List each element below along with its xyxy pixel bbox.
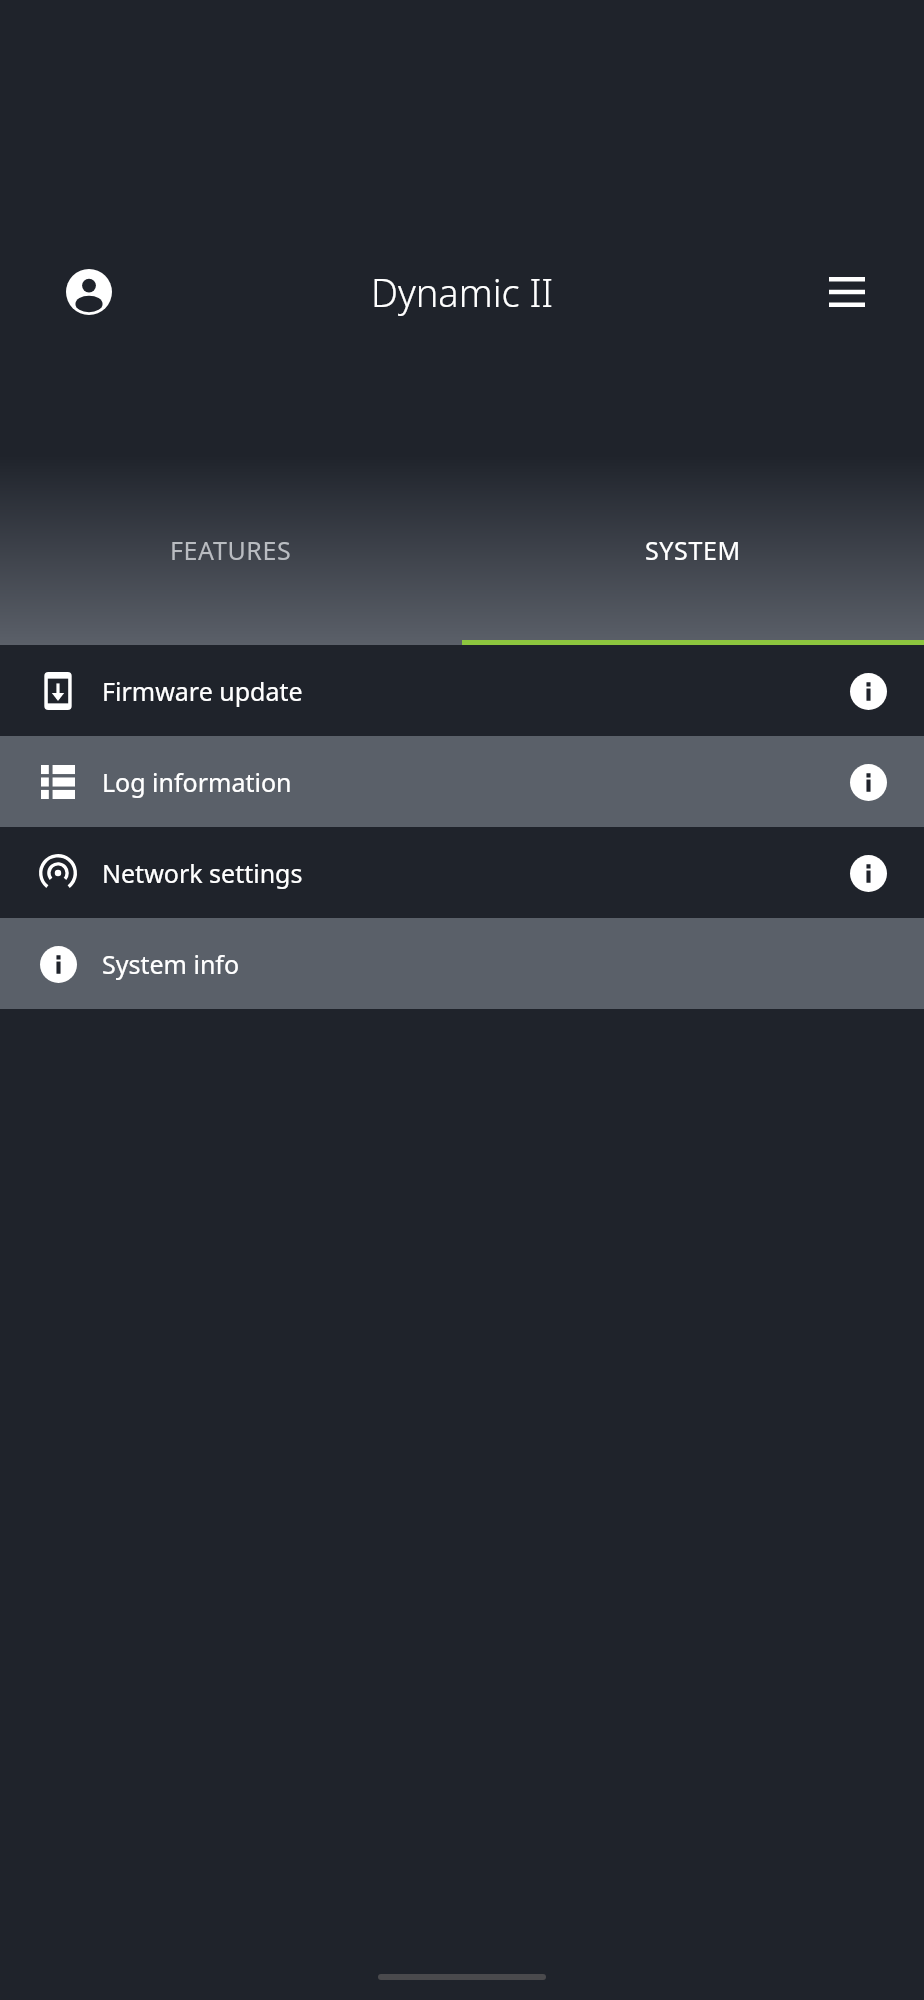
button[interactable]: FEATURES — [0, 455, 462, 645]
button[interactable]: Account — [56, 259, 122, 325]
button[interactable]: Firmware update — [0, 645, 924, 736]
staticText: System info — [102, 947, 240, 981]
button[interactable]: Network settings — [0, 827, 924, 918]
staticText: Network settings — [102, 856, 303, 890]
staticText: FEATURES — [170, 533, 292, 567]
button[interactable]: Log information — [0, 736, 924, 827]
staticText: SYSTEM — [645, 533, 741, 567]
button[interactable]: SYSTEM — [462, 455, 924, 645]
button[interactable]: System info — [0, 918, 924, 1009]
button[interactable]: Menu — [814, 259, 880, 325]
staticText: Log information — [102, 765, 292, 799]
button[interactable]: Network settings info — [844, 849, 892, 897]
staticText: Dynamic II — [0, 266, 924, 318]
button[interactable]: Firmware update info — [844, 667, 892, 715]
staticText: Firmware update — [102, 674, 303, 708]
button[interactable]: Log information info — [844, 758, 892, 806]
